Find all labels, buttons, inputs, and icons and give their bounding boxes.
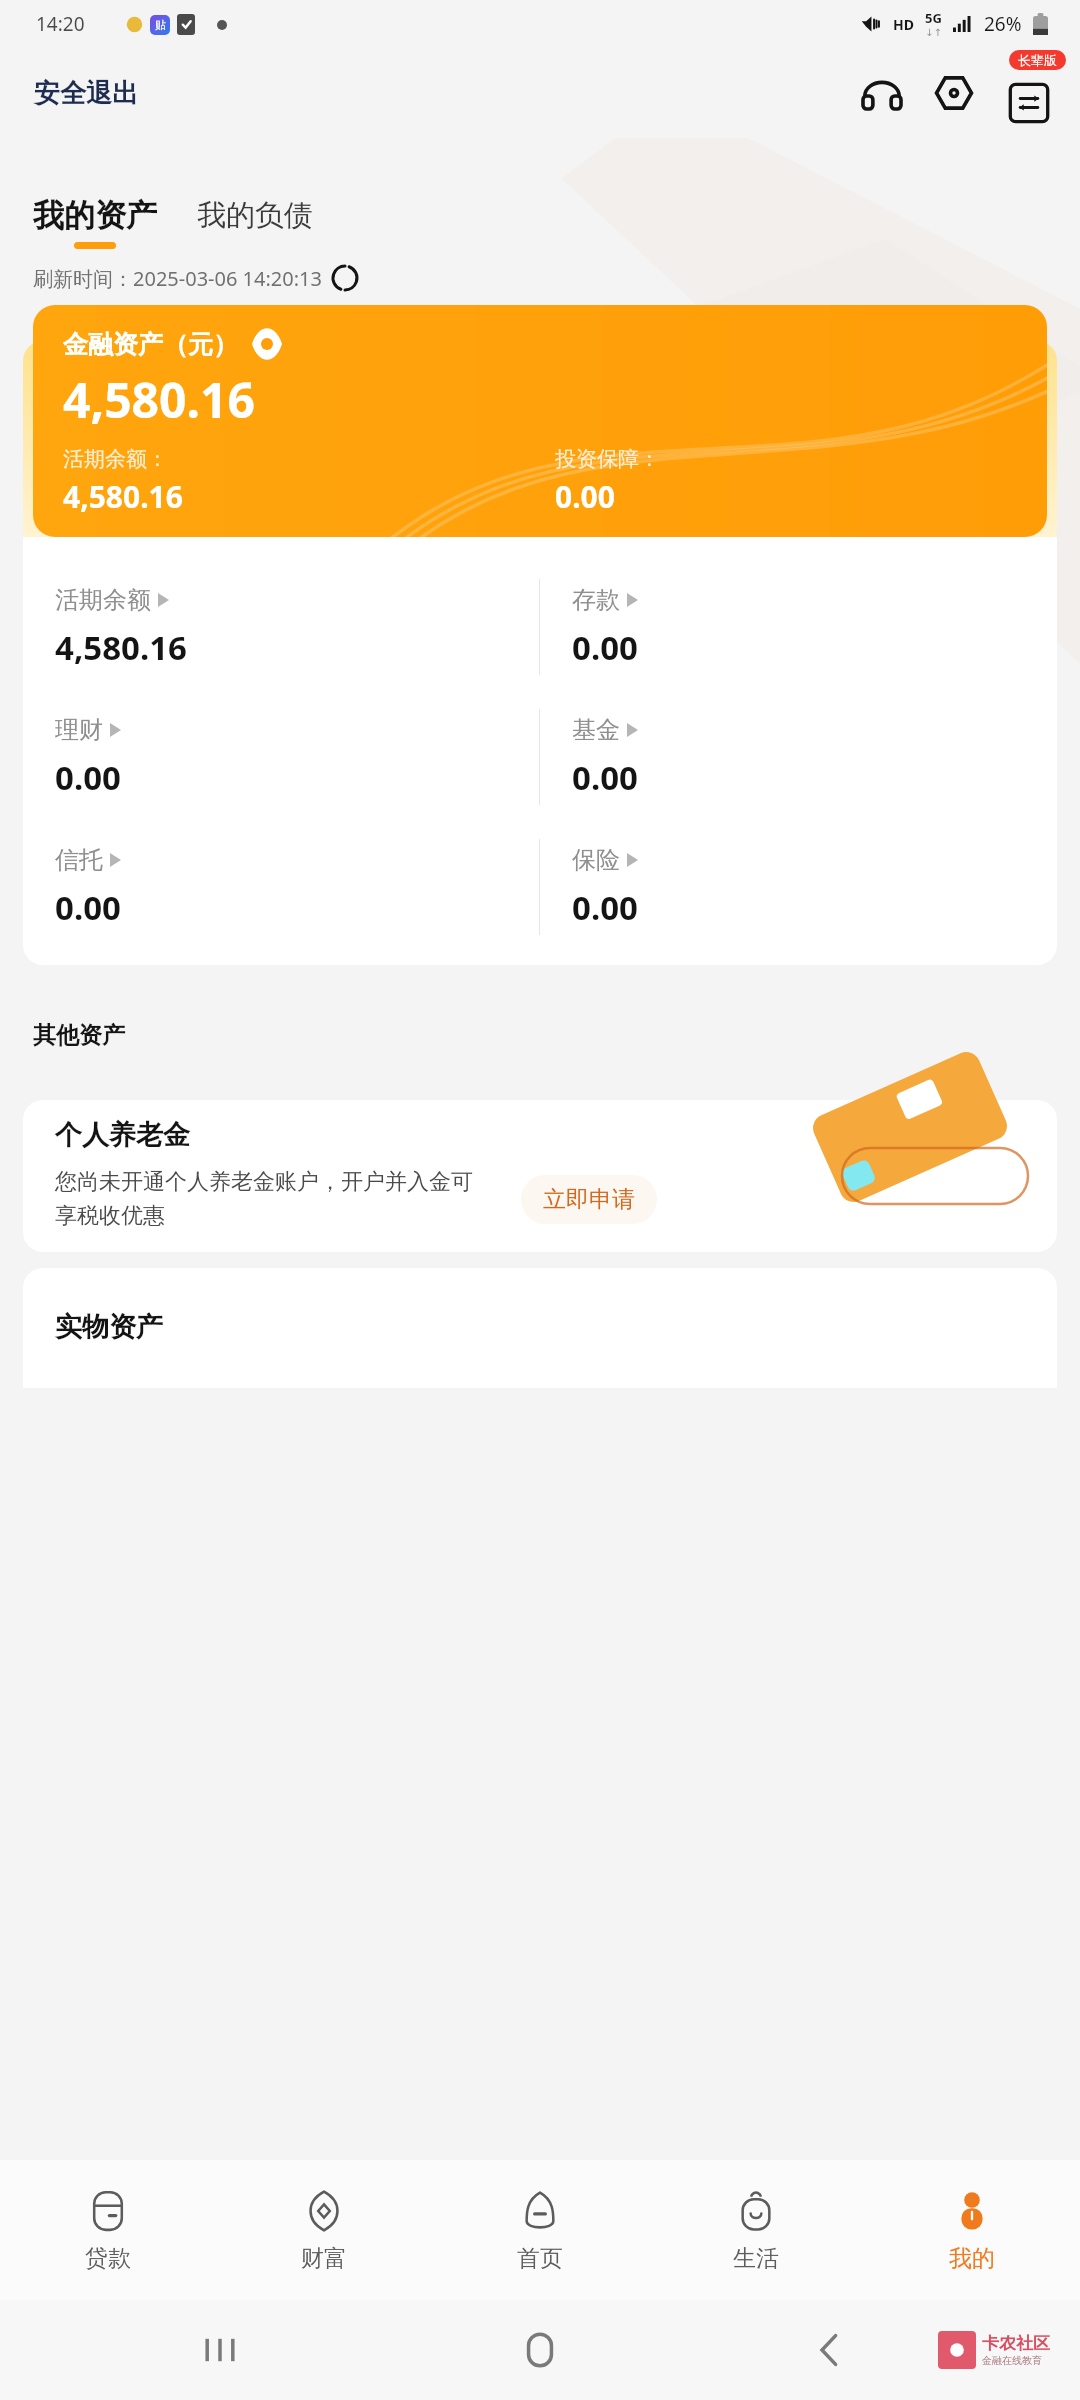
staticText: 生活 — [733, 2244, 779, 2273]
other: 刷新 — [330, 263, 360, 293]
staticText: 我的 — [949, 2244, 995, 2273]
staticText: 投资保障： — [555, 446, 660, 472]
staticText: 4,580.16 — [63, 367, 255, 432]
staticText: 个人养老金 — [55, 1118, 190, 1152]
staticText: 刷新时间：2025-03-06 14:20:13 — [33, 265, 322, 292]
staticText: 金融在线教育 — [982, 2354, 1042, 2367]
button[interactable] — [23, 1100, 1057, 1252]
button[interactable]: 存款 — [540, 579, 1057, 675]
button[interactable]: 刷新时间：2025-03-06 14:20:13 — [33, 263, 360, 293]
button[interactable]: 我的负债 — [197, 196, 313, 234]
button[interactable]: 贷款 — [0, 2160, 216, 2300]
button[interactable]: 保险 — [540, 839, 1057, 935]
staticText: 0.00 — [572, 755, 638, 800]
staticText: 活期余额： — [63, 446, 168, 472]
staticText: 卡农社区 — [982, 2333, 1050, 2354]
staticText: 0.00 — [55, 885, 121, 930]
button[interactable]: 设置 — [928, 67, 980, 119]
button[interactable]: 我的资产 — [33, 196, 157, 249]
staticText: 理财 — [55, 715, 103, 745]
staticText: 金融资产（元） — [63, 329, 238, 360]
button[interactable]: 活期余额 — [23, 579, 539, 675]
staticText: 贴 — [155, 18, 166, 32]
staticText: 我的资产 — [33, 196, 157, 235]
staticText: ↓↑ — [925, 27, 942, 39]
staticText: 5G — [925, 9, 942, 27]
staticText: 其他资产 — [33, 1021, 125, 1050]
staticText: 您尚未开通个人养老金账户，开户并入金可 享税收优惠 — [55, 1168, 505, 1230]
staticText: 我的权益 — [718, 138, 802, 140]
button[interactable]: 基金 — [540, 709, 1057, 805]
button[interactable]: 我的权益 — [712, 138, 808, 140]
button[interactable]: 我的 — [864, 2160, 1080, 2300]
button[interactable]: 金融资产（元） — [33, 305, 1047, 537]
staticText: 0.00 — [555, 476, 615, 517]
button[interactable]: 财富 — [216, 2160, 432, 2300]
staticText: 基金 — [572, 715, 620, 745]
staticText: 0.00 — [55, 755, 121, 800]
staticText: 长辈版 — [1018, 52, 1057, 68]
staticText: 实物资产 — [55, 1310, 163, 1344]
button[interactable]: 显示金额 — [250, 327, 284, 361]
staticText: 立即申请 — [543, 1185, 635, 1214]
button[interactable]: 长辈版切换 — [1006, 80, 1052, 126]
staticText: 活期余额 — [55, 585, 151, 615]
button[interactable]: 信托 — [23, 839, 539, 935]
staticText: 14:20 — [36, 11, 85, 37]
staticText: 4,580.16 — [63, 476, 183, 517]
button[interactable]: 实物资产 — [23, 1268, 1057, 1388]
staticText: 0.00 — [572, 625, 638, 670]
staticText: 首页 — [517, 2244, 563, 2273]
button[interactable]: 生活 — [648, 2160, 864, 2300]
button[interactable]: 理财 — [23, 709, 539, 805]
staticText: 我的负债 — [197, 197, 313, 234]
staticText: 财富 — [301, 2244, 347, 2273]
staticText: 26% — [984, 11, 1022, 37]
staticText: 贷款 — [85, 2244, 131, 2273]
staticText: 安全退出 — [34, 77, 138, 110]
staticText: 信托 — [55, 845, 103, 875]
staticText: HD — [893, 15, 914, 34]
button[interactable]: 客服 — [856, 67, 908, 119]
staticText: 存款 — [572, 585, 620, 615]
staticText: 0.00 — [572, 885, 638, 930]
button[interactable]: 立即申请 — [521, 1175, 657, 1224]
staticText: 4,580.16 — [55, 625, 187, 670]
staticText: 保险 — [572, 845, 620, 875]
button[interactable]: 首页 — [432, 2160, 648, 2300]
button[interactable]: 安全退出 — [18, 69, 154, 118]
